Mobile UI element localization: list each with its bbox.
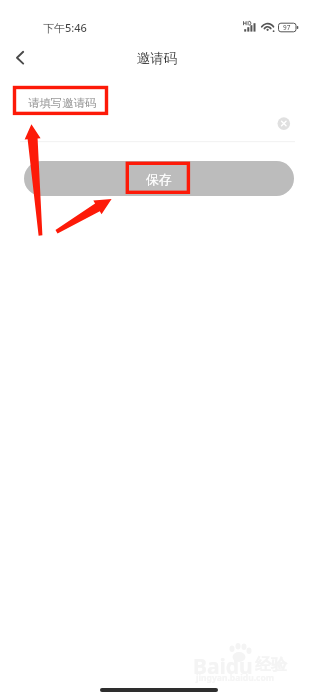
button[interactable]: 保存	[24, 161, 294, 196]
staticText: 请填写邀请码	[28, 96, 97, 110]
staticText: 经验	[255, 655, 287, 675]
staticText: 下午5:46	[43, 20, 87, 35]
button[interactable]: Back	[8, 44, 36, 72]
staticText: jingyan.baidu.com	[196, 672, 275, 684]
staticText: 97	[283, 23, 291, 32]
staticText: 邀请码	[0, 50, 314, 67]
button[interactable]: Invitation code input	[20, 90, 275, 140]
staticText: 保存	[146, 172, 172, 188]
staticText: Baidu	[193, 652, 253, 681]
button[interactable]: Clear text	[276, 115, 292, 131]
